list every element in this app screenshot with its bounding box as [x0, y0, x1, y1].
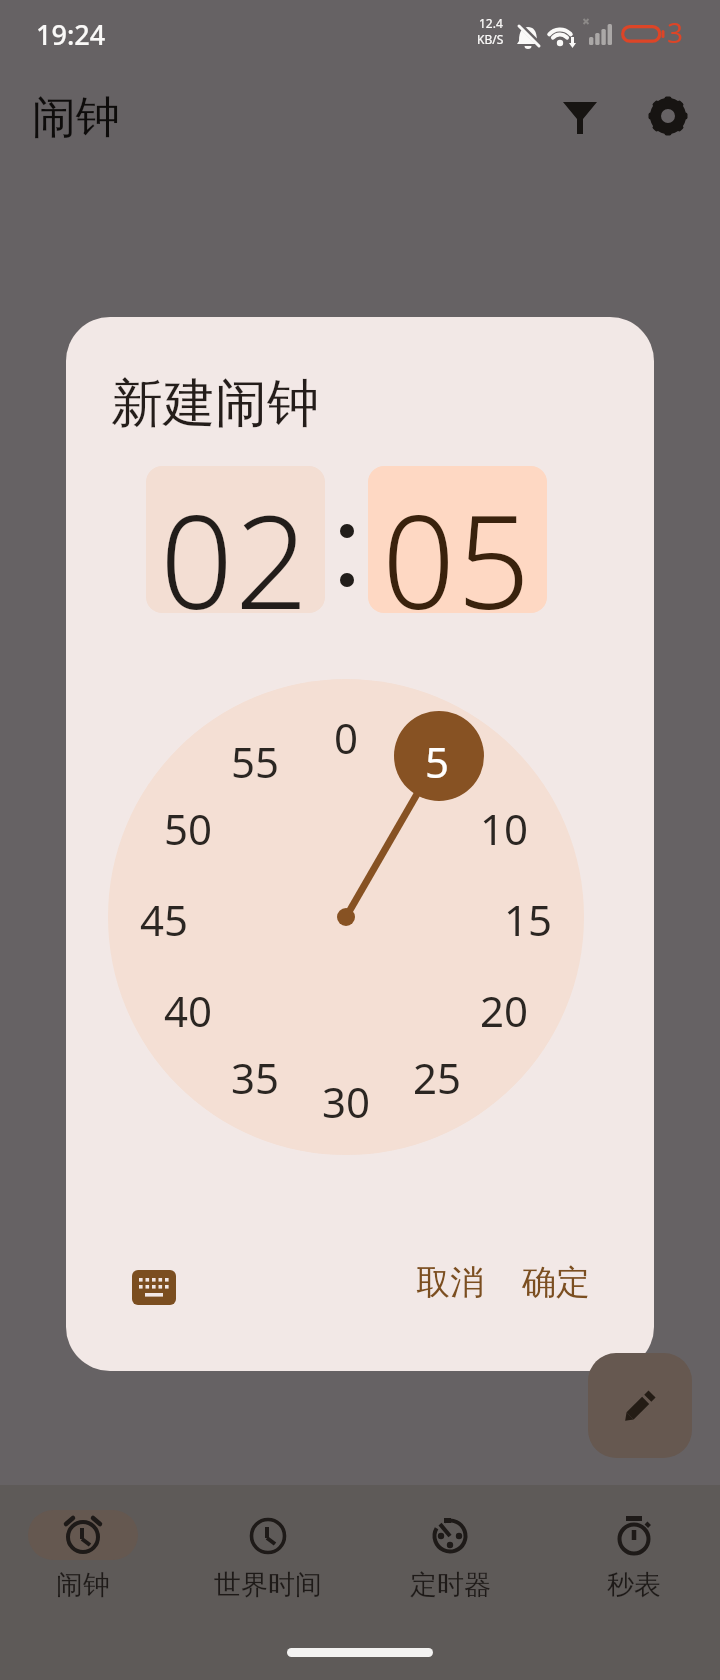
button[interactable] [124, 1259, 184, 1317]
staticText: 30 [322, 1073, 371, 1125]
staticText: 19:24 [36, 16, 106, 53]
staticText: 取消 [416, 1261, 484, 1304]
staticText: KB/S [477, 31, 504, 47]
staticText: 35 [231, 1049, 280, 1101]
button[interactable]: 确定 [508, 1247, 604, 1317]
staticText: 闹钟 [56, 1568, 110, 1602]
staticText: 12.4 [479, 15, 503, 31]
button[interactable]: 世界时间 [178, 1510, 358, 1630]
staticText: 25 [413, 1049, 462, 1101]
button[interactable] [588, 1353, 692, 1458]
staticText: 新建闹钟 [111, 371, 319, 437]
staticText: 定时器 [410, 1568, 491, 1602]
staticText: 世界时间 [214, 1568, 322, 1602]
button[interactable] [556, 94, 604, 142]
button[interactable]: 定时器 [360, 1510, 540, 1630]
staticText: 0 [334, 709, 359, 761]
staticText: 确定 [522, 1261, 590, 1304]
staticText: 20 [480, 982, 529, 1034]
button[interactable]: 05 [368, 466, 547, 613]
button[interactable]: 02 [146, 466, 325, 613]
staticText: 5 [425, 733, 450, 785]
staticText: 10 [480, 800, 529, 852]
staticText: 02 [160, 472, 311, 613]
staticText: 50 [164, 800, 213, 852]
staticText: 3 [667, 13, 684, 51]
staticText: 闹钟 [32, 90, 120, 145]
button[interactable]: 秒表 [544, 1510, 720, 1630]
button[interactable]: 闹钟 [0, 1510, 173, 1630]
staticText: 45 [140, 891, 189, 943]
button[interactable] [646, 94, 690, 138]
staticText: 40 [164, 982, 213, 1034]
button[interactable]: 取消 [402, 1247, 498, 1317]
staticText: 05 [382, 472, 533, 613]
staticText: 秒表 [607, 1568, 661, 1602]
staticText: 15 [504, 891, 553, 943]
staticText: 55 [231, 733, 280, 785]
